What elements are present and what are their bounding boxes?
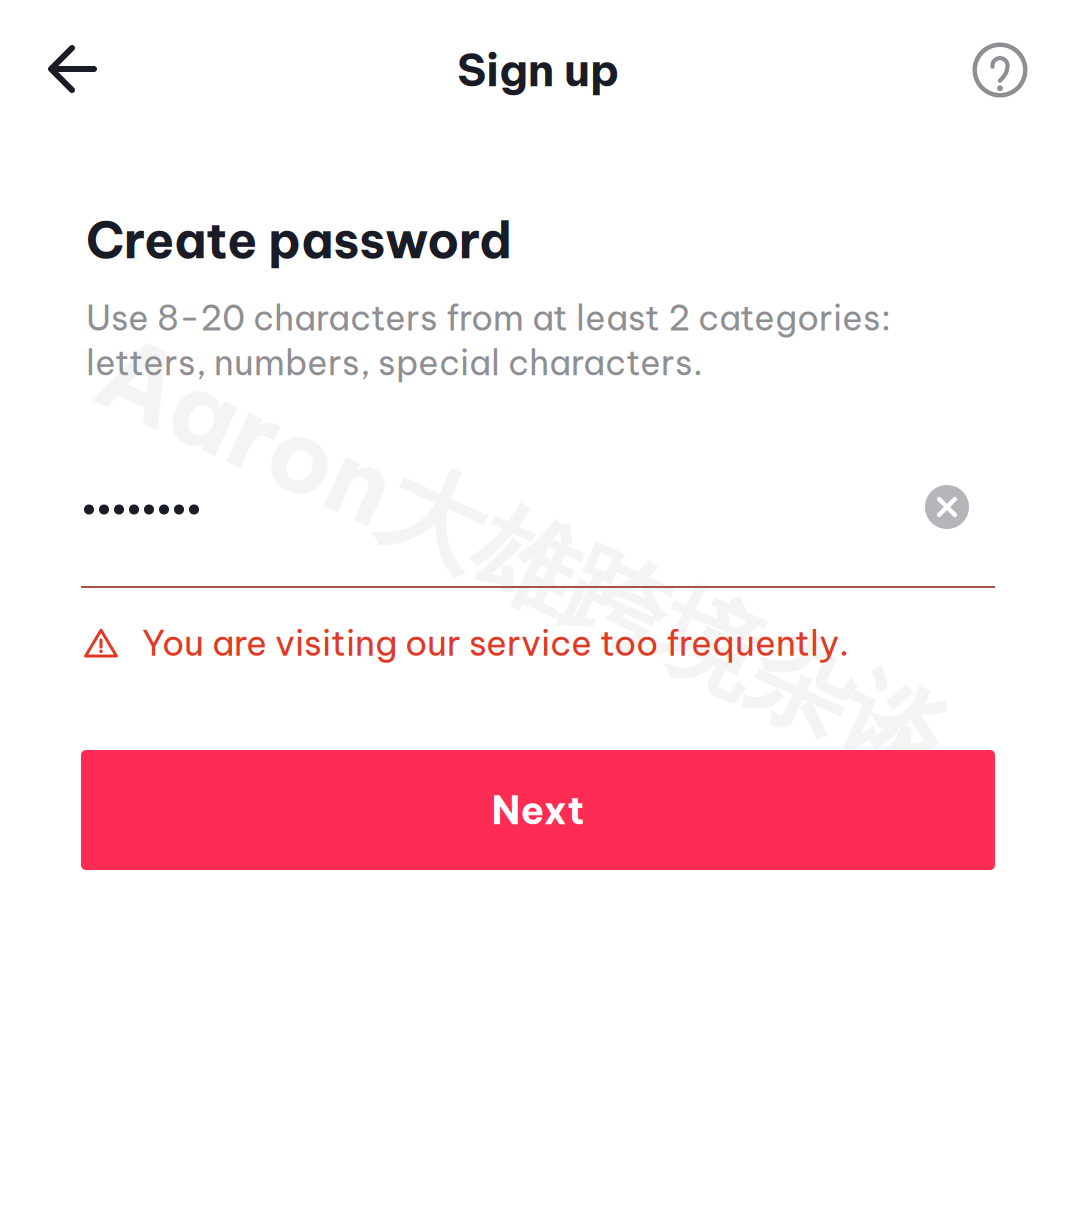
button[interactable]: Next — [81, 750, 995, 870]
staticText: Next — [491, 785, 584, 834]
staticText: You are visiting our service too frequen… — [142, 621, 849, 665]
staticText: Aaron大雄跨境杂谈 — [63, 492, 981, 624]
button[interactable]: Help — [954, 24, 1046, 116]
staticText: Sign up — [457, 42, 619, 98]
staticText: Use 8-20 characters from at least 2 cate… — [86, 296, 891, 340]
staticText: Create password — [86, 209, 512, 271]
button[interactable]: Clear text — [925, 485, 969, 529]
button[interactable]: Back — [24, 21, 120, 117]
staticText: letters, numbers, special characters. — [86, 341, 703, 384]
